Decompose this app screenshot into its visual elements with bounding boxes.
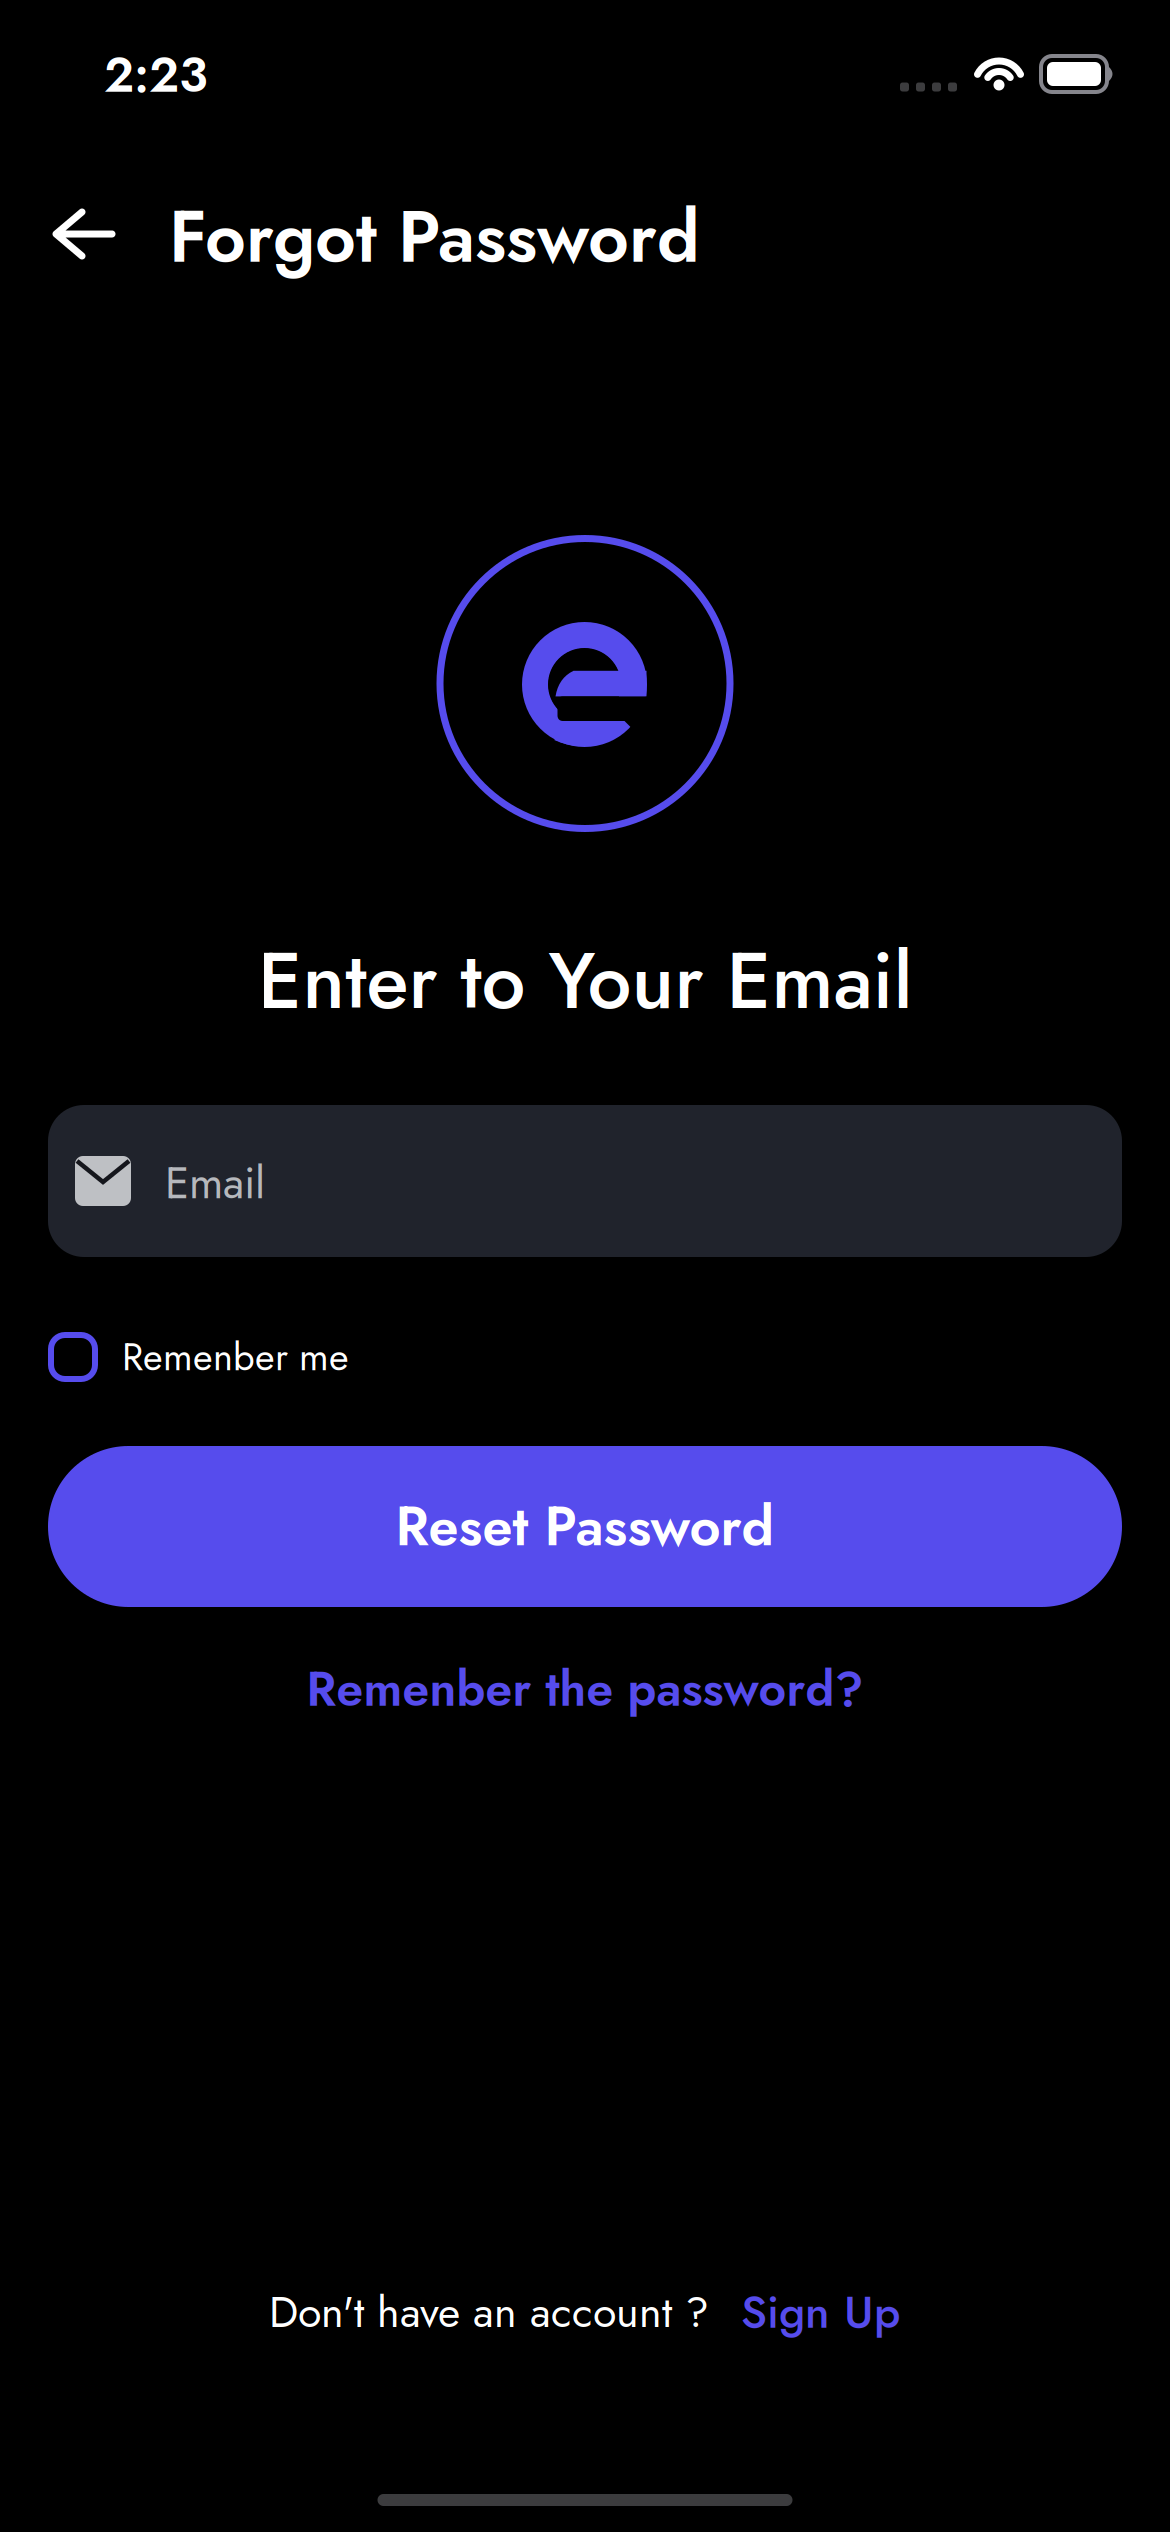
staticText: Don't have an account ? [269, 2281, 709, 2343]
staticText: Sign Up [741, 2279, 901, 2344]
staticText: Forgot Password [169, 186, 700, 288]
staticText: Remenber me [122, 1329, 349, 1384]
button[interactable] [52, 207, 116, 261]
staticText: 2:23 [104, 40, 208, 110]
button[interactable]: Remenber the password? [306, 1655, 863, 1723]
staticText: Reset Password [395, 1487, 774, 1565]
staticText: Email [165, 1151, 265, 1215]
button[interactable]: Sign Up [741, 2279, 901, 2344]
button[interactable]: Reset Password [48, 1446, 1122, 1607]
staticText: Remenber the password? [306, 1654, 863, 1724]
button[interactable]: Remenber me [48, 1329, 349, 1384]
staticText: Enter to Your Email [257, 925, 912, 1037]
button[interactable]: Email [48, 1105, 1122, 1257]
